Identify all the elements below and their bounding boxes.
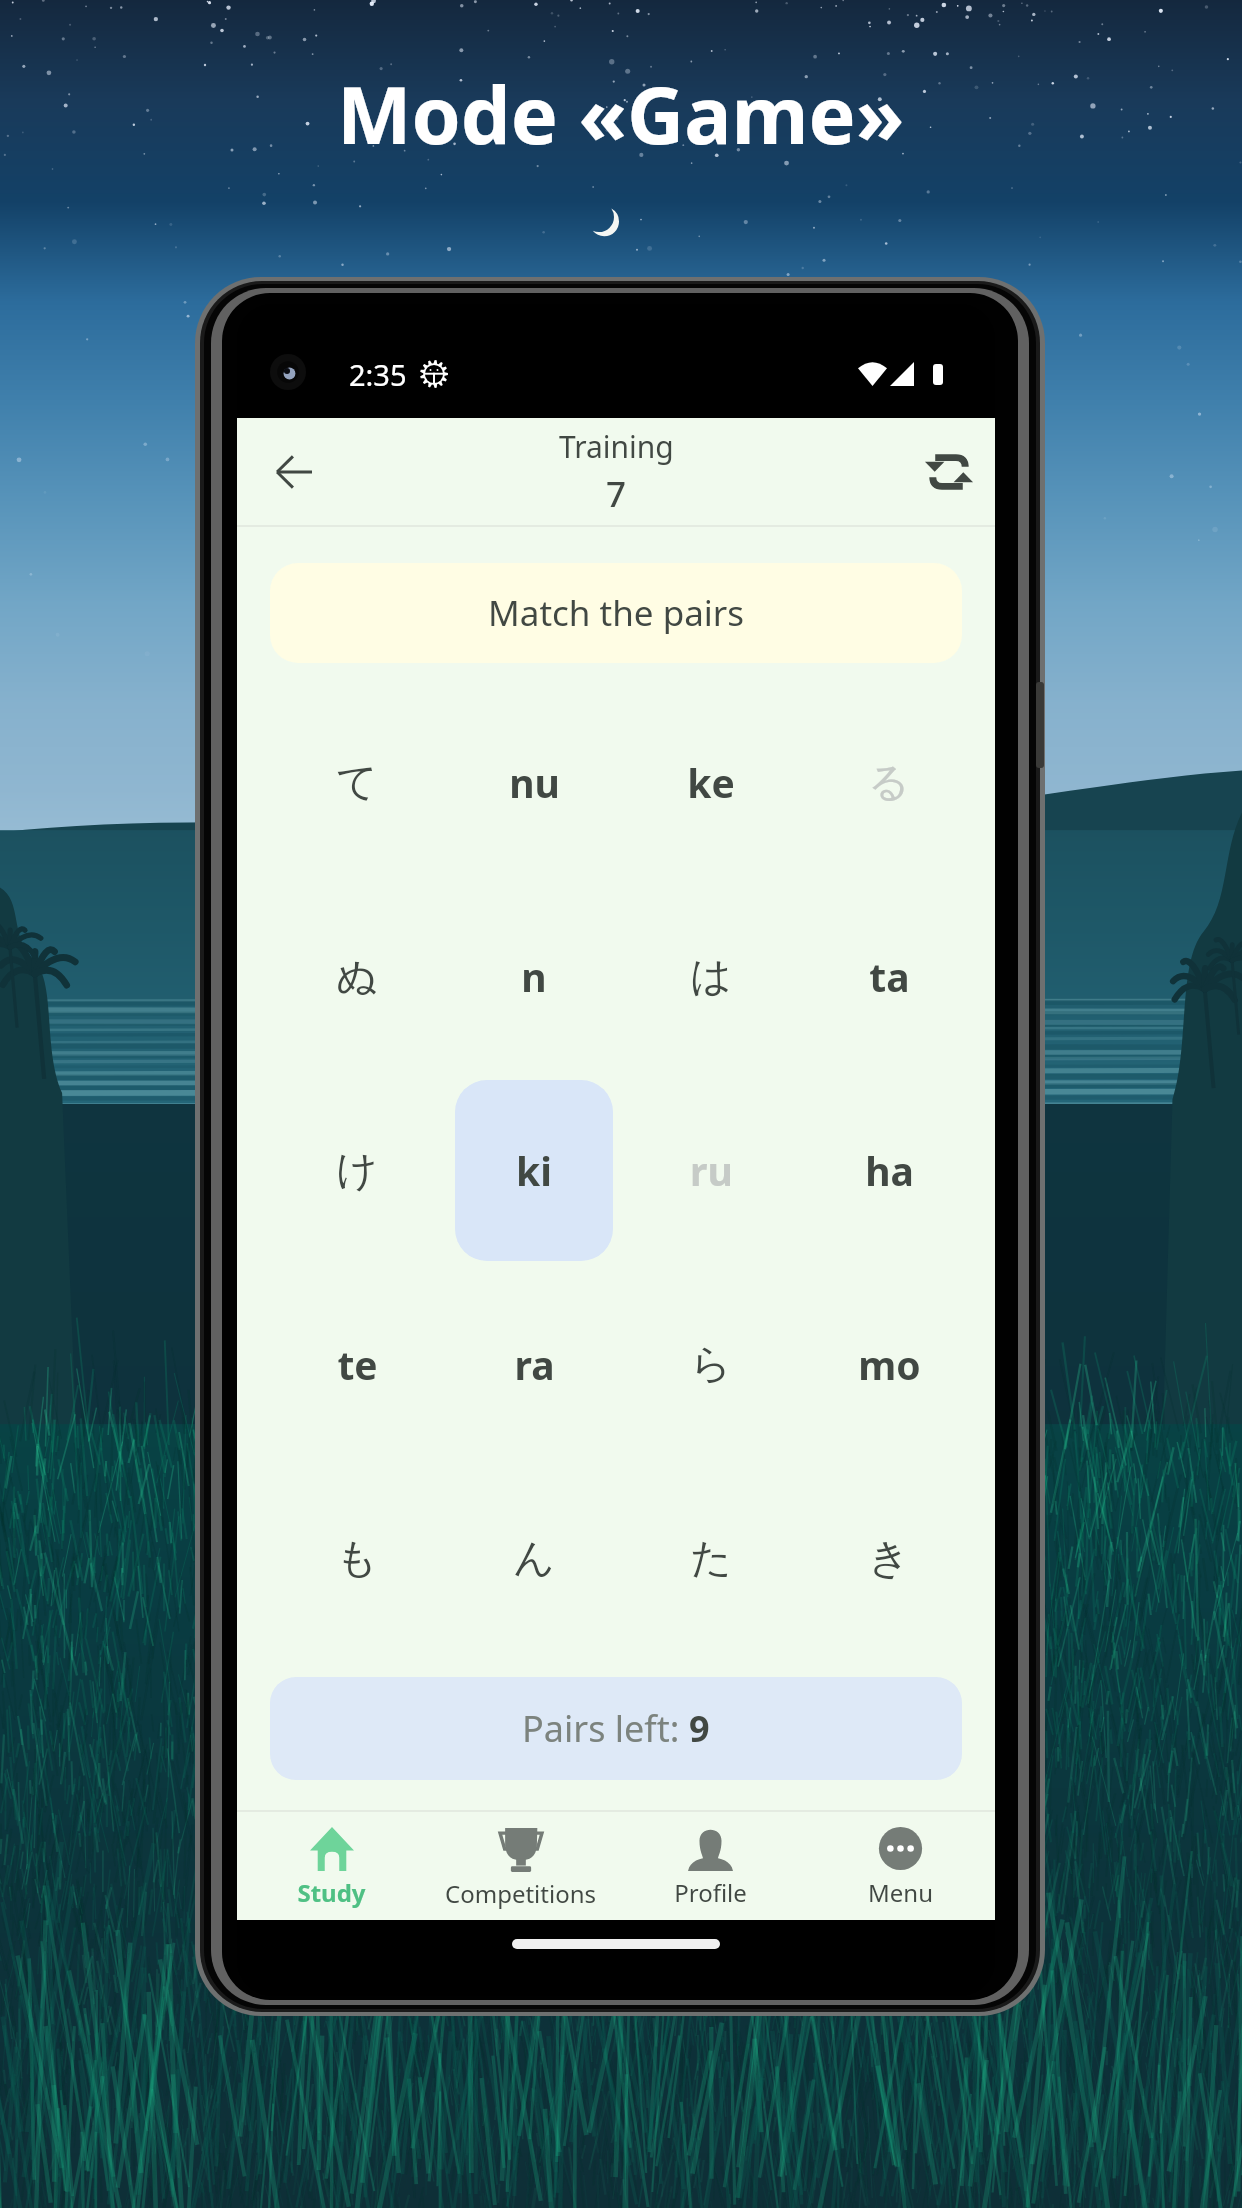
button[interactable]: も [278,1468,436,1649]
staticText: te [337,1338,378,1391]
button[interactable]: Study [237,1812,426,1920]
button[interactable]: Back [249,418,339,525]
staticText: Profile [674,1876,747,1909]
button[interactable]: は [632,886,790,1067]
button[interactable]: Match the pairs [270,563,962,663]
staticText: 2:35 [349,355,407,394]
button[interactable]: け [278,1080,436,1261]
button[interactable]: te [278,1274,436,1455]
staticText: Study [297,1876,366,1909]
button[interactable]: Competitions [426,1812,615,1920]
staticText: ら [690,1339,732,1391]
button[interactable]: る [810,692,968,873]
button[interactable]: Menu [805,1812,995,1920]
button[interactable]: Restart [904,418,994,525]
staticText: Menu [868,1876,933,1909]
staticText: ん [513,1533,555,1585]
staticText: Training [559,426,674,467]
staticText: n [521,950,547,1003]
button[interactable]: ら [632,1274,790,1455]
staticText: も [336,1533,378,1585]
button[interactable]: た [632,1468,790,1649]
staticText: Pairs left: [522,1704,689,1753]
staticText: Mode «Game» [337,60,905,168]
staticText: Match the pairs [488,589,745,637]
button[interactable]: ki [455,1080,613,1261]
staticText: た [690,1533,732,1585]
button[interactable]: nu [455,692,613,873]
staticText: ta [869,950,910,1003]
button[interactable]: n [455,886,613,1067]
button[interactable]: ru [632,1080,790,1261]
staticText: ki [516,1144,552,1197]
button[interactable]: ta [810,886,968,1067]
button[interactable]: Pairs left: [270,1677,962,1780]
staticText: ke [687,756,735,809]
staticText: ra [514,1338,555,1391]
staticText: る [868,757,910,809]
button[interactable]: ke [632,692,790,873]
button[interactable]: Profile [615,1812,805,1920]
button[interactable]: き [810,1468,968,1649]
staticText: て [336,757,378,809]
staticText: ぬ [336,951,378,1003]
staticText: ha [865,1144,914,1197]
staticText: は [690,951,732,1003]
staticText: Competitions [445,1877,596,1910]
staticText: け [336,1145,378,1197]
staticText: 7 [606,470,627,518]
button[interactable]: ra [455,1274,613,1455]
staticText: ru [690,1144,733,1197]
button[interactable]: ぬ [278,886,436,1067]
button[interactable]: て [278,692,436,873]
button[interactable]: ha [810,1080,968,1261]
staticText: nu [509,756,560,809]
staticText: き [868,1533,910,1585]
button[interactable]: ん [455,1468,613,1649]
staticText: 9 [689,1704,710,1753]
button[interactable]: mo [810,1274,968,1455]
staticText: mo [858,1338,921,1391]
